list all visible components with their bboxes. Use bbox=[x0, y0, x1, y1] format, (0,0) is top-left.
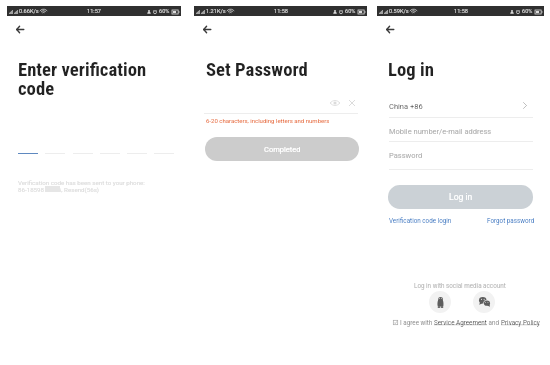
staticText: Verification code has been sent to your … bbox=[18, 179, 145, 194]
button[interactable]: I agree with bbox=[393, 319, 540, 326]
button[interactable]: Back bbox=[380, 20, 399, 39]
staticText: China +86 bbox=[389, 102, 423, 111]
staticText: Privacy Policy bbox=[501, 319, 540, 326]
button[interactable]: Back bbox=[10, 20, 29, 39]
button[interactable]: Log in bbox=[388, 185, 533, 209]
button[interactable]: Log in with QQ bbox=[429, 291, 451, 313]
button[interactable]: Verification code login bbox=[389, 217, 452, 224]
button[interactable]: Log in with WeChat bbox=[473, 291, 495, 313]
staticText: Log in bbox=[449, 192, 473, 202]
staticText: 60% bbox=[345, 8, 356, 15]
staticText: Log in with social media account bbox=[414, 282, 506, 289]
staticText: 0.59K/s bbox=[389, 8, 409, 15]
button[interactable]: Forgot password bbox=[487, 217, 535, 224]
staticText: Log in bbox=[388, 59, 434, 81]
staticText: Service Agreement bbox=[434, 319, 487, 326]
staticText: I agree with bbox=[400, 319, 434, 326]
staticText: Enter verification code bbox=[18, 59, 147, 100]
button[interactable]: Back bbox=[197, 20, 216, 39]
staticText: Password bbox=[389, 151, 423, 160]
staticText: Completed bbox=[264, 145, 301, 154]
staticText: 1.21K/s bbox=[206, 8, 226, 15]
staticText: 11:57 bbox=[87, 8, 101, 15]
staticText: 60% bbox=[522, 8, 533, 15]
staticText: 6-20 characters, including letters and n… bbox=[206, 117, 330, 124]
staticText: 0.66K/s bbox=[19, 8, 39, 15]
staticText: Mobile number/e-mail address bbox=[389, 127, 492, 136]
staticText: Set Password bbox=[206, 59, 308, 81]
button[interactable]: Completed bbox=[205, 137, 359, 161]
staticText: and bbox=[487, 319, 501, 326]
button[interactable]: Show password bbox=[329, 97, 341, 109]
staticText: 11:58 bbox=[274, 8, 288, 15]
staticText: 11:58 bbox=[454, 8, 468, 15]
button[interactable]: China +86 bbox=[389, 98, 534, 114]
button[interactable]: Clear bbox=[346, 97, 358, 109]
staticText: 60% bbox=[159, 8, 170, 15]
